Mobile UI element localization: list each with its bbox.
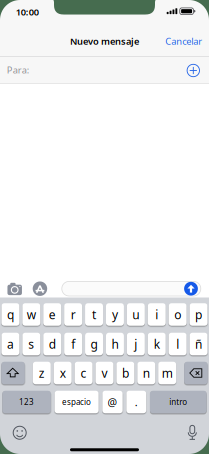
staticText: w [27,306,36,322]
staticText: r [71,306,76,322]
staticText: d [49,336,56,352]
button[interactable]: x [54,362,72,384]
button[interactable]: s [22,333,40,355]
button[interactable] [186,63,209,77]
staticText: o [174,306,181,322]
button[interactable]: f [64,333,82,355]
button[interactable]: a [1,333,19,355]
staticText: x [60,365,66,381]
staticText: s [28,336,34,352]
staticText: m [162,365,173,381]
button[interactable]: d [43,333,61,355]
button[interactable] [184,362,208,384]
button[interactable]: j [127,333,145,355]
button[interactable]: Cancelar [165,35,202,47]
button[interactable] [7,282,22,295]
staticText: j [134,336,137,352]
button[interactable]: espacio [54,391,99,413]
button[interactable]: c [75,362,93,384]
staticText: ñ [195,336,202,352]
button[interactable]: m [158,362,176,384]
button[interactable]: n [137,362,155,384]
button[interactable] [1,362,25,384]
button[interactable]: g [85,333,103,355]
staticText: intro [169,397,187,407]
staticText: y [112,306,118,322]
button[interactable]: u [127,303,145,326]
staticText: Cancelar [165,35,202,47]
staticText: e [49,306,56,322]
button[interactable]: i [148,303,166,326]
button[interactable]: intro [150,391,207,413]
staticText: k [154,336,160,352]
button[interactable]: @ [102,391,123,413]
button[interactable]: e [43,303,61,326]
staticText: u [132,306,139,322]
staticText: a [7,336,14,352]
button[interactable]: z [33,362,51,384]
button[interactable]: v [95,362,113,384]
staticText: g [90,336,97,352]
button[interactable]: r [64,303,82,326]
button[interactable] [62,281,201,296]
staticText: espacio [62,397,91,407]
staticText: v [101,365,107,381]
button[interactable] [33,281,47,296]
button[interactable]: 123 [2,391,51,413]
staticText: q [7,306,14,322]
button[interactable]: q [1,303,19,326]
staticText: c [81,365,87,381]
staticText: l [176,336,179,352]
staticText: 10:00 [16,6,39,18]
button[interactable]: o [169,303,187,326]
staticText: i [155,306,158,322]
staticText: b [122,365,129,381]
staticText: n [143,365,150,381]
button[interactable]: ñ [190,333,208,355]
button[interactable]: w [22,303,40,326]
staticText: f [71,336,75,352]
staticText: . [135,395,138,409]
staticText: p [195,306,202,322]
staticText: 123 [19,397,34,407]
staticText: t [92,306,96,322]
button[interactable] [186,425,198,440]
staticText: h [111,336,118,352]
button[interactable]: l [169,333,187,355]
button[interactable]: b [116,362,134,384]
button[interactable] [13,426,27,440]
button[interactable]: k [148,333,166,355]
staticText: Nuevo mensaje [70,35,139,47]
button[interactable]: t [85,303,103,326]
button[interactable]: y [106,303,124,326]
staticText: @ [107,395,117,409]
staticText: z [39,365,45,381]
button[interactable]: . [126,391,146,413]
staticText: Para: [7,64,30,76]
button[interactable]: h [106,333,124,355]
button[interactable]: p [190,303,208,326]
